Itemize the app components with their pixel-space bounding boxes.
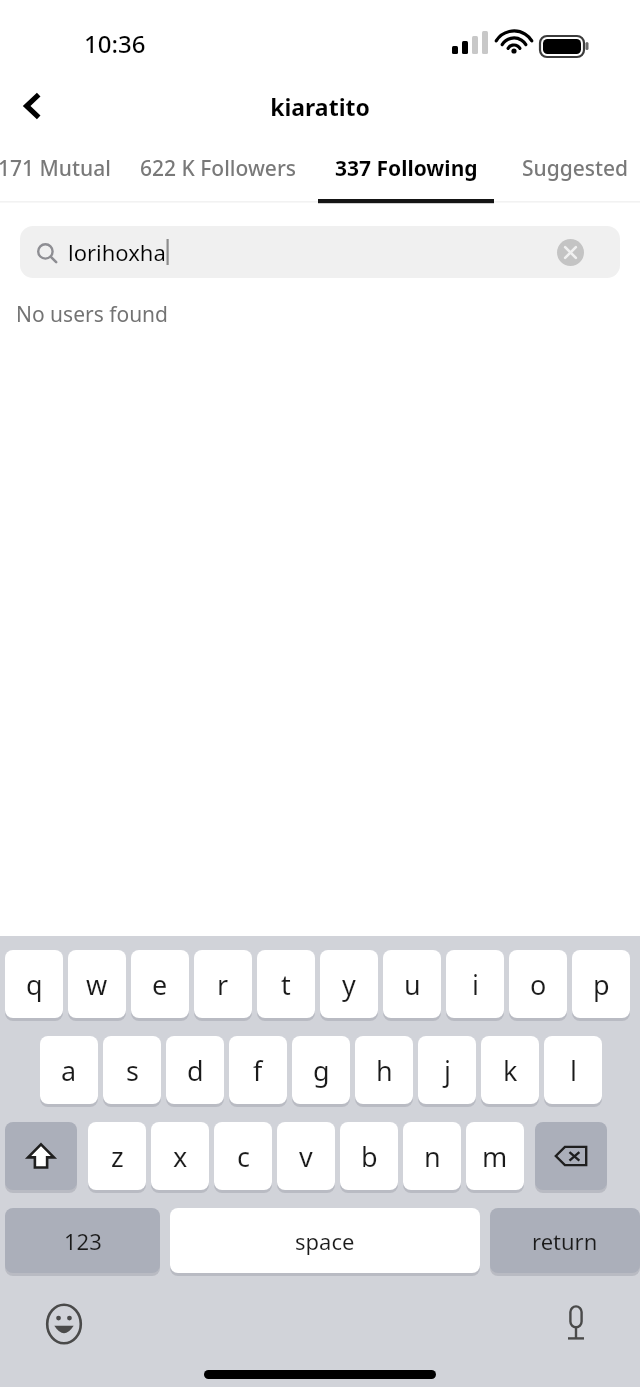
button[interactable]: 171 Mutual <box>0 140 117 197</box>
button[interactable]: g <box>292 1036 350 1104</box>
staticText: return <box>532 1226 598 1256</box>
button[interactable]: w <box>68 950 126 1018</box>
button[interactable]: space <box>170 1208 480 1273</box>
button[interactable]: z <box>88 1122 146 1190</box>
button[interactable]: p <box>572 950 630 1018</box>
staticText: q <box>26 966 43 1003</box>
button[interactable]: Suggested <box>500 140 640 197</box>
button[interactable]: k <box>481 1036 539 1104</box>
button[interactable]: Backspace <box>535 1122 607 1190</box>
button[interactable]: o <box>509 950 567 1018</box>
button[interactable]: b <box>340 1122 398 1190</box>
button[interactable]: q <box>5 950 63 1018</box>
staticText: i <box>472 966 479 1003</box>
button[interactable]: f <box>229 1036 287 1104</box>
staticText: y <box>342 966 356 1003</box>
staticText: c <box>237 1138 250 1175</box>
staticText: f <box>253 1052 263 1089</box>
staticText: o <box>530 966 547 1003</box>
button[interactable]: x <box>151 1122 209 1190</box>
staticText: Suggested <box>522 154 629 183</box>
staticText: g <box>313 1052 330 1089</box>
staticText: 171 Mutual <box>0 154 111 183</box>
staticText: l <box>570 1052 577 1089</box>
button[interactable]: Clear text <box>544 226 596 278</box>
button[interactable]: 337 Following <box>314 140 498 197</box>
button[interactable]: u <box>383 950 441 1018</box>
button[interactable]: 622 K Followers <box>128 140 308 197</box>
button[interactable]: e <box>131 950 189 1018</box>
staticText: 337 Following <box>335 154 478 183</box>
staticText: No users found <box>16 300 168 329</box>
staticText: z <box>111 1138 124 1175</box>
button[interactable]: t <box>257 950 315 1018</box>
button[interactable]: y <box>320 950 378 1018</box>
button[interactable]: Voice input <box>550 1298 602 1350</box>
staticText: h <box>376 1052 393 1089</box>
staticText: x <box>173 1138 188 1175</box>
staticText: lorihoxha <box>68 237 166 267</box>
button[interactable]: s <box>103 1036 161 1104</box>
staticText: m <box>482 1138 508 1175</box>
staticText: 123 <box>64 1226 102 1256</box>
button[interactable]: n <box>403 1122 461 1190</box>
button[interactable]: Shift <box>5 1122 77 1190</box>
staticText: kiaratito <box>0 91 640 122</box>
staticText: r <box>217 966 229 1003</box>
button[interactable]: Back <box>4 78 60 134</box>
button[interactable]: Emoji <box>38 1298 90 1350</box>
staticText: w <box>86 966 108 1003</box>
button[interactable]: l <box>544 1036 602 1104</box>
button[interactable]: return <box>490 1208 640 1273</box>
staticText: j <box>444 1052 451 1089</box>
button[interactable]: d <box>166 1036 224 1104</box>
button[interactable]: a <box>40 1036 98 1104</box>
staticText: 622 K Followers <box>140 154 296 183</box>
staticText: v <box>299 1138 313 1175</box>
button[interactable]: c <box>214 1122 272 1190</box>
staticText: d <box>187 1052 204 1089</box>
staticText: u <box>404 966 421 1003</box>
button[interactable]: h <box>355 1036 413 1104</box>
staticText: space <box>295 1226 355 1256</box>
button[interactable]: lorihoxha <box>20 226 620 278</box>
staticText: e <box>152 966 168 1003</box>
staticText: b <box>361 1138 378 1175</box>
button[interactable]: r <box>194 950 252 1018</box>
staticText: k <box>503 1052 518 1089</box>
button[interactable]: i <box>446 950 504 1018</box>
staticText: n <box>424 1138 441 1175</box>
button[interactable]: m <box>466 1122 524 1190</box>
staticText: a <box>61 1052 77 1089</box>
staticText: 10:36 <box>84 27 146 60</box>
button[interactable]: 123 <box>5 1208 160 1273</box>
staticText: s <box>126 1052 139 1089</box>
staticText: p <box>593 966 610 1003</box>
button[interactable]: v <box>277 1122 335 1190</box>
button[interactable]: j <box>418 1036 476 1104</box>
staticText: t <box>281 966 291 1003</box>
